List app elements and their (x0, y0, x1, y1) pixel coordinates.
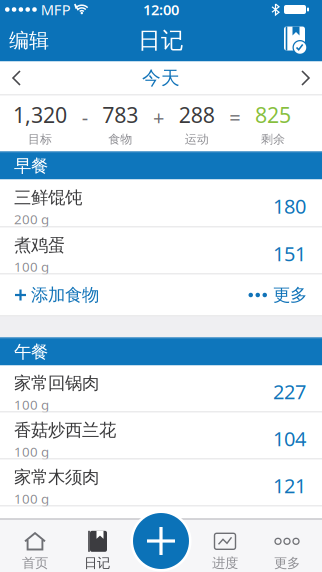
staticText: 首页 (22, 555, 48, 571)
staticText: 100 g (14, 443, 49, 460)
staticText: + (153, 104, 164, 131)
staticText: = (229, 104, 240, 131)
staticText: 100 g (14, 490, 49, 507)
staticText: 227 (273, 378, 306, 405)
staticText: 目标 (28, 132, 52, 146)
staticText: 121 (273, 472, 306, 499)
staticText: 午餐 (14, 341, 48, 363)
button[interactable]: 编辑 (0, 28, 49, 53)
button[interactable]: 后一天 (301, 71, 322, 85)
button[interactable]: 今天 (142, 66, 180, 89)
button[interactable]: 完成日记 (279, 25, 322, 55)
staticText: 825 (255, 100, 291, 129)
staticText: 进度 (212, 555, 238, 571)
staticText: 更多 (273, 284, 307, 306)
staticText: 添加食物 (31, 284, 99, 306)
staticText: 香菇炒西兰花 (14, 419, 116, 441)
button[interactable]: 更多 (256, 521, 318, 571)
staticText: 100 g (14, 258, 49, 275)
staticText: 更多 (274, 555, 300, 571)
staticText: - (82, 104, 88, 131)
button[interactable]: 日记 (66, 521, 128, 571)
staticText: 12:00 (143, 0, 179, 19)
staticText: 日记 (84, 555, 110, 571)
staticText: 783 (102, 100, 138, 129)
staticText: 151 (273, 240, 306, 267)
staticText: 煮鸡蛋 (14, 234, 65, 256)
staticText: 今天 (142, 66, 180, 89)
staticText: 食物 (108, 132, 132, 146)
button[interactable]: 添加 (130, 510, 191, 571)
staticText: 剩余 (261, 132, 285, 146)
staticText: 100 g (14, 396, 49, 413)
button[interactable]: 家常木须肉 (0, 459, 322, 506)
staticText: 家常木须肉 (14, 466, 99, 488)
button[interactable]: 添加食物 (0, 284, 99, 306)
staticText: 200 g (14, 210, 49, 228)
button[interactable]: 香菇炒西兰花 (0, 412, 322, 459)
button[interactable]: 前一天 (0, 71, 21, 85)
staticText: 日记 (138, 27, 184, 54)
button[interactable]: 家常回锅肉 (0, 365, 322, 412)
staticText: 1,320 (13, 100, 67, 129)
staticText: 288 (179, 100, 215, 129)
staticText: 家常回锅肉 (14, 372, 99, 394)
staticText: 运动 (185, 132, 209, 146)
button[interactable]: 三鲜馄饨 (0, 179, 322, 227)
button[interactable]: 煮鸡蛋 (0, 227, 322, 274)
staticText: 三鲜馄饨 (14, 187, 82, 208)
staticText: 104 (273, 425, 306, 452)
button[interactable]: 进度 (194, 521, 256, 571)
staticText: 早餐 (14, 155, 48, 177)
staticText: 180 (273, 193, 306, 219)
staticText: 编辑 (9, 28, 49, 53)
button[interactable]: 首页 (4, 521, 66, 571)
staticText: MFP (41, 0, 71, 19)
button[interactable]: 更多 (248, 284, 322, 306)
